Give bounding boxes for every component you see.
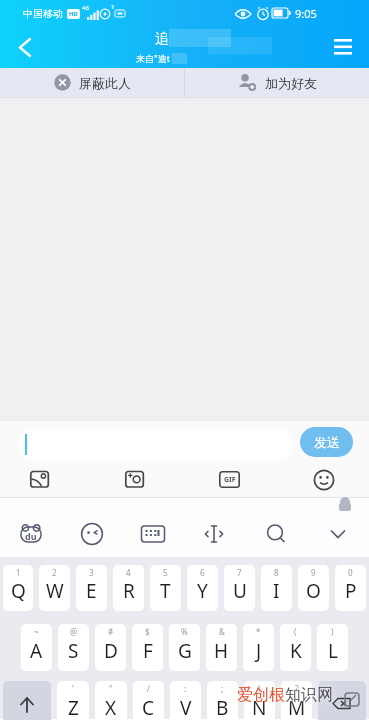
staticText: F [143,638,153,664]
button[interactable]: ; [207,681,238,720]
staticText: & [219,626,225,637]
staticText: 9:05 [295,6,317,21]
button[interactable]: $ [132,624,163,671]
button[interactable] [30,470,51,489]
staticText: H [214,638,229,664]
staticText: C [142,695,155,720]
button[interactable]: du [0,511,61,557]
button[interactable]: 6 [187,565,218,611]
staticText: G [178,638,192,664]
staticText: R [123,578,135,604]
button[interactable]: ~ [21,624,52,671]
button[interactable]: 屏蔽此人 [0,68,184,97]
button[interactable]: ? [281,681,312,720]
button[interactable]: # [95,624,126,671]
staticText: ( [294,626,297,637]
staticText: J [256,638,262,664]
staticText: Y [197,578,208,604]
staticText: Z [68,695,79,720]
button[interactable]: : [170,681,201,720]
staticText: 追 [155,30,169,48]
staticText: du [25,530,37,542]
staticText: : [184,683,187,694]
staticText: GIF [224,475,236,485]
button[interactable]: 2 [39,565,70,611]
button[interactable] [122,511,183,557]
staticText: # [108,626,114,637]
staticText: 屏蔽此人 [79,75,131,91]
staticText: 1 [16,567,21,578]
staticText: O [306,578,321,604]
button[interactable] [245,511,307,557]
staticText: @ [70,626,78,637]
button[interactable]: @ [58,624,89,671]
staticText: 来自"造t [136,52,170,64]
staticText: ~ [34,626,39,637]
staticText: 加为好友 [265,75,317,91]
staticText: 爱创根 [237,685,285,705]
button[interactable]: ' [57,681,89,720]
button[interactable]: 0 [335,565,366,611]
button[interactable]: 发送 [300,427,353,457]
button[interactable] [183,511,245,557]
staticText: V [180,695,192,720]
staticText: T [160,578,171,604]
staticText: 7 [237,567,242,578]
button[interactable] [307,511,369,557]
button[interactable]: 3 [76,565,107,611]
button[interactable] [12,33,40,61]
button[interactable] [313,469,335,491]
staticText: 9 [311,567,316,578]
staticText: " [109,683,113,694]
button[interactable]: GIF [219,471,240,488]
staticText: * [256,626,261,637]
staticText: 0 [348,567,353,578]
button[interactable]: 7 [224,565,255,611]
button[interactable]: 9 [298,565,329,611]
staticText: ! [258,683,261,694]
button[interactable]: / [133,681,164,720]
button[interactable]: 加为好友 [185,68,369,97]
button[interactable]: ( [280,624,311,671]
button[interactable]: 8 [261,565,292,611]
button[interactable] [125,470,146,489]
button[interactable]: ) [317,624,348,671]
staticText: ' [72,683,74,694]
staticText: 知识网 [285,685,333,705]
button[interactable] [318,681,366,720]
staticText: ; [221,683,224,694]
button[interactable] [3,681,51,720]
button[interactable]: 1 [3,565,33,611]
staticText: 5 [163,567,168,578]
staticText: M [288,695,306,720]
staticText: ? [295,683,299,694]
staticText: P [345,578,357,604]
staticText: Q [11,578,26,604]
staticText: $ [145,626,150,637]
button[interactable] [18,429,293,460]
staticText: 2 [52,567,57,578]
staticText: ) [331,626,334,637]
staticText: / [147,683,150,694]
staticText: 4 [126,567,131,578]
staticText: 8 [274,567,279,578]
button[interactable]: & [206,624,237,671]
button[interactable]: ! [244,681,275,720]
button[interactable] [330,36,356,60]
staticText: B [216,695,229,720]
staticText: 6 [200,567,205,578]
staticText: S [68,638,79,664]
staticText: HD [69,10,78,18]
staticText: D [104,638,118,664]
button[interactable]: % [169,624,200,671]
button[interactable]: 5 [150,565,181,611]
staticText: E [86,578,97,604]
button[interactable]: " [95,681,127,720]
staticText: % [181,626,188,637]
staticText: 3 [89,567,94,578]
staticText: I [273,578,280,604]
button[interactable]: 4 [113,565,144,611]
button[interactable]: * [243,624,274,671]
button[interactable] [61,511,122,557]
staticText: A [30,638,43,664]
